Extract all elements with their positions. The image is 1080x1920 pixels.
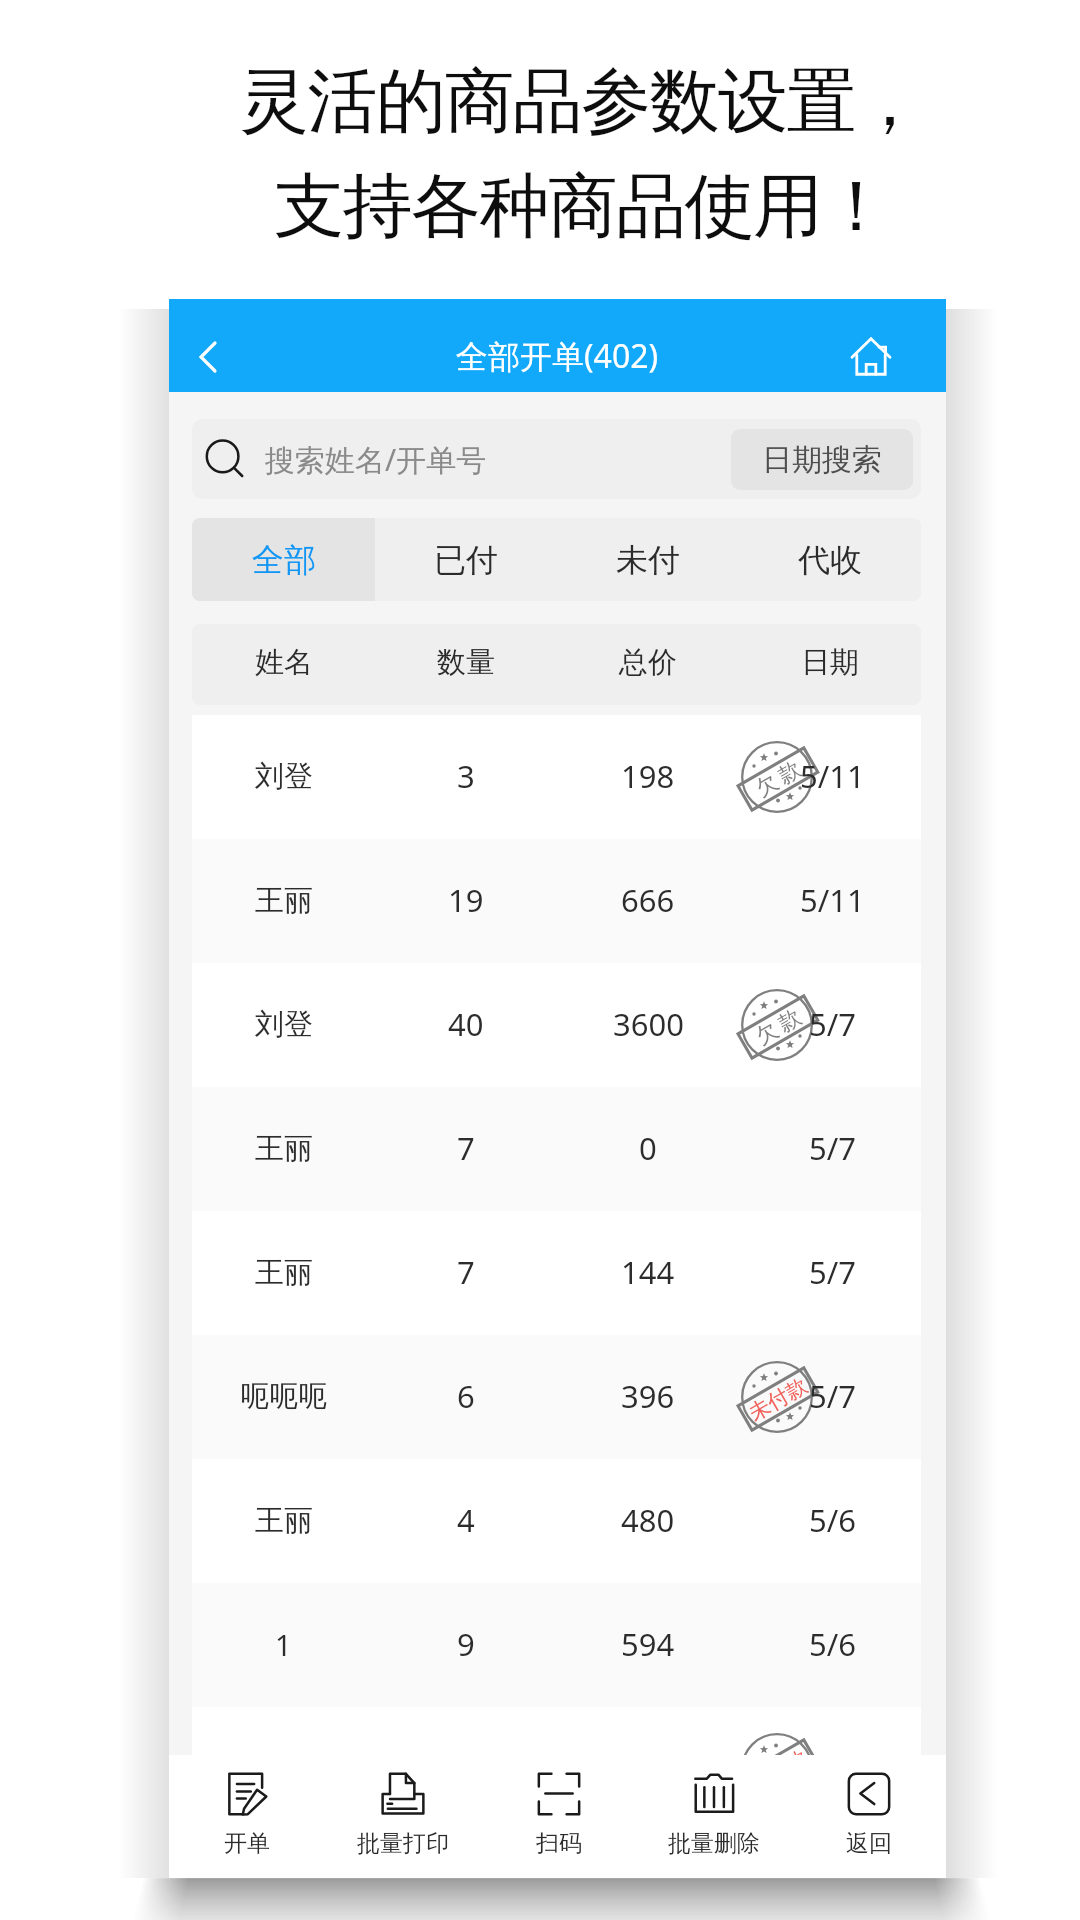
other: Back — [848, 1773, 890, 1815]
staticText: 198 — [621, 755, 675, 797]
staticText: 未付款 — [744, 1743, 812, 1755]
staticText: 刘登 — [255, 1006, 313, 1043]
staticText: 返回 — [846, 1829, 892, 1858]
button[interactable]: 全部 — [192, 518, 375, 601]
button[interactable]: New order — [169, 1755, 325, 1878]
staticText: 代收 — [798, 540, 862, 580]
button[interactable]: Back — [791, 1755, 946, 1878]
staticText: 4 — [457, 1499, 475, 1541]
staticText: 666 — [621, 879, 675, 921]
staticText: 5/6 — [809, 1747, 856, 1755]
staticText: 5/7 — [809, 1375, 856, 1417]
staticText: 日期 — [801, 644, 859, 681]
staticText: 9 — [457, 1623, 475, 1665]
other: Batch delete — [693, 1773, 735, 1815]
staticText: 搜索姓名/开单号 — [265, 439, 487, 480]
staticText: 王丽 — [255, 1502, 313, 1539]
staticText: 6 — [457, 1375, 475, 1417]
staticText: 5/7 — [809, 1251, 856, 1293]
staticText: 日期搜索 — [762, 441, 882, 479]
staticText: 王丽 — [255, 882, 313, 919]
button[interactable]: 呃呃呃 — [192, 1335, 921, 1459]
button[interactable]: 代收 — [739, 518, 921, 601]
other: Batch print — [382, 1773, 424, 1815]
staticText: 40 — [448, 1003, 484, 1045]
staticText: 0 — [639, 1127, 657, 1169]
button[interactable]: 未付 — [557, 518, 739, 601]
staticText: 全部 — [252, 540, 316, 580]
staticText: 欠款 — [749, 1001, 808, 1051]
staticText: 未付 — [616, 540, 680, 580]
staticText: 7 — [457, 1251, 475, 1293]
staticText: 全部开单(402) — [456, 334, 659, 378]
staticText: 支持各种商品使用！ — [274, 163, 890, 251]
staticText: 未付款 — [744, 1371, 812, 1425]
button[interactable]: 王丽 — [192, 1707, 921, 1755]
staticText: 594 — [621, 1623, 675, 1665]
staticText: 396 — [621, 1375, 675, 1417]
button[interactable]: Batch print — [325, 1755, 481, 1878]
button[interactable]: Back — [168, 320, 248, 393]
other: Scan code — [538, 1773, 580, 1815]
staticText: 5/11 — [800, 755, 865, 797]
staticText: 姓名 — [255, 644, 313, 681]
staticText: 总价 — [619, 644, 677, 681]
staticText: 王丽 — [255, 1254, 313, 1291]
button[interactable]: 日期搜索 — [731, 429, 913, 490]
staticText: 刘登 — [255, 758, 313, 795]
staticText: 数量 — [437, 644, 495, 681]
staticText: 7 — [457, 1127, 475, 1169]
button[interactable]: 王丽 — [192, 1087, 921, 1211]
staticText: 5/6 — [809, 1623, 856, 1665]
button[interactable]: 刘登 — [192, 963, 921, 1087]
staticText: 批量删除 — [668, 1829, 760, 1858]
button[interactable]: 搜索姓名/开单号 — [192, 419, 921, 499]
staticText: 1 — [275, 1625, 292, 1664]
staticText: 5/11 — [800, 879, 865, 921]
button[interactable]: 王丽 — [192, 1211, 921, 1335]
button[interactable]: 1 — [192, 1583, 921, 1707]
staticText: 5/7 — [809, 1127, 856, 1169]
button[interactable]: 已付 — [375, 518, 557, 601]
staticText: 3 — [457, 755, 475, 797]
staticText: 19 — [448, 879, 484, 921]
staticText: 灵活的商品参数设置， — [240, 58, 924, 146]
staticText: 144 — [621, 1251, 675, 1293]
staticText: 5/6 — [809, 1499, 856, 1541]
button[interactable]: 王丽 — [192, 1459, 921, 1583]
staticText: 王丽 — [255, 1130, 313, 1167]
staticText: 欠款 — [749, 753, 808, 803]
staticText: 480 — [621, 1499, 675, 1541]
staticText: 批量打印 — [357, 1829, 449, 1858]
staticText: 开单 — [224, 1829, 270, 1858]
button[interactable]: 刘登 — [192, 715, 921, 839]
staticText: 5/7 — [809, 1003, 856, 1045]
other: New order — [226, 1773, 268, 1815]
staticText: 呃呃呃 — [240, 1378, 327, 1415]
button[interactable]: Scan code — [481, 1755, 636, 1878]
button[interactable]: 王丽 — [192, 839, 921, 963]
staticText: 3600 — [613, 1003, 684, 1045]
staticText: 已付 — [434, 540, 498, 580]
button[interactable]: Home — [836, 321, 906, 391]
staticText: 扫码 — [536, 1829, 582, 1858]
button[interactable]: Batch delete — [636, 1755, 791, 1878]
